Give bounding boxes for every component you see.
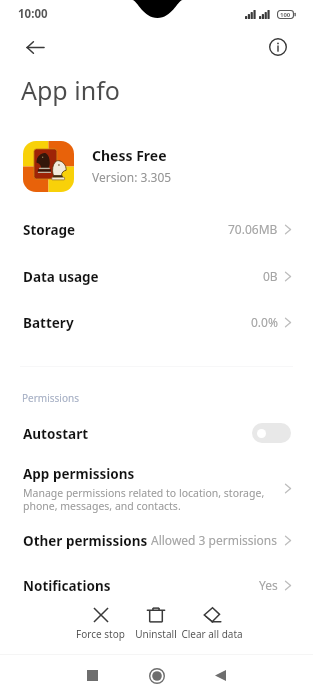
staticText: Other permissions bbox=[23, 532, 148, 550]
button[interactable]: Storage bbox=[0, 206, 313, 252]
staticText: Clear all data bbox=[181, 627, 243, 641]
staticText: App info bbox=[21, 73, 120, 107]
staticText: Storage bbox=[23, 221, 76, 239]
staticText: Permissions bbox=[22, 391, 79, 405]
staticText: Version: 3.305 bbox=[92, 169, 172, 185]
staticText: Autostart bbox=[23, 425, 89, 443]
staticText: Chess Free bbox=[92, 146, 167, 165]
button[interactable]: Battery bbox=[0, 299, 313, 345]
staticText: Data usage bbox=[23, 268, 99, 286]
staticText: Uninstall bbox=[135, 627, 177, 641]
staticText: Notifications bbox=[23, 577, 111, 595]
button[interactable]: Notifications bbox=[0, 562, 313, 608]
button[interactable]: Recents bbox=[70, 655, 114, 696]
button[interactable]: Clear all data bbox=[179, 600, 245, 654]
staticText: Allowed 3 permissions bbox=[151, 532, 278, 548]
button[interactable]: Data usage bbox=[0, 253, 313, 299]
button[interactable]: Back bbox=[198, 655, 242, 696]
staticText: 0.0% bbox=[251, 314, 278, 330]
staticText: 100 bbox=[280, 11, 291, 19]
staticText: App permissions bbox=[23, 465, 135, 483]
button[interactable]: Autostart bbox=[0, 410, 313, 456]
button[interactable]: App details bbox=[258, 27, 298, 67]
staticText: 10:00 bbox=[18, 6, 48, 22]
staticText: Manage permissions related to location, … bbox=[23, 486, 265, 513]
button[interactable]: Home bbox=[135, 655, 179, 696]
button[interactable]: Uninstall bbox=[123, 600, 189, 654]
staticText: Yes bbox=[259, 577, 278, 593]
button[interactable]: Back bbox=[15, 27, 55, 67]
button[interactable]: Force stop bbox=[67, 600, 133, 654]
staticText: Battery bbox=[23, 314, 74, 332]
staticText: 70.06MB bbox=[228, 221, 278, 237]
button[interactable]: Other permissions bbox=[0, 517, 313, 563]
button[interactable]: App permissions bbox=[0, 459, 313, 517]
staticText: 0B bbox=[263, 268, 278, 284]
staticText: Force stop bbox=[76, 627, 125, 641]
